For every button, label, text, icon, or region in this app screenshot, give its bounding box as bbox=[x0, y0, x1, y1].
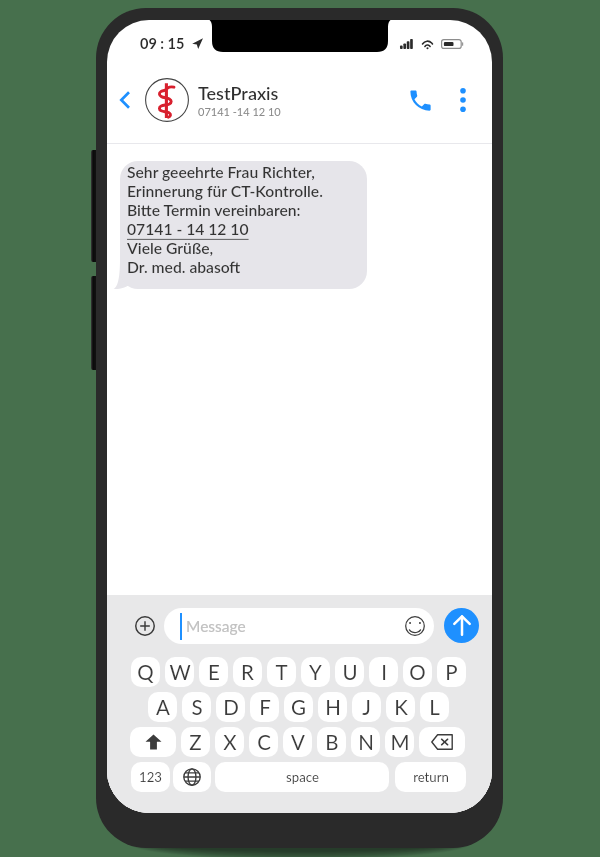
staticText: Viele Grüße, bbox=[127, 239, 214, 258]
staticText: Erinnerung für CT-Kontrolle. bbox=[127, 182, 323, 201]
button[interactable]: Z bbox=[181, 727, 210, 757]
button[interactable]: H bbox=[318, 692, 347, 722]
staticText: TestPraxis bbox=[198, 82, 279, 104]
button[interactable]: A bbox=[148, 692, 177, 722]
button[interactable]: K bbox=[386, 692, 415, 722]
button[interactable] bbox=[130, 727, 176, 757]
staticText: Dr. med. abasoft bbox=[127, 258, 241, 277]
button[interactable]: Add attachment bbox=[131, 612, 159, 640]
button[interactable]: return bbox=[395, 762, 466, 792]
button[interactable]: N bbox=[351, 727, 380, 757]
staticText: L bbox=[429, 695, 440, 720]
button[interactable] bbox=[419, 727, 465, 757]
other: Backspace bbox=[419, 727, 465, 757]
button[interactable]: Send bbox=[444, 608, 479, 643]
staticText: P bbox=[445, 660, 458, 685]
button[interactable]: Y bbox=[301, 657, 330, 687]
button[interactable]: T bbox=[267, 657, 296, 687]
staticText: space bbox=[286, 769, 319, 785]
button[interactable]: W bbox=[165, 657, 194, 687]
staticText: W bbox=[169, 660, 191, 685]
staticText: V bbox=[291, 730, 305, 755]
button[interactable]: O bbox=[403, 657, 432, 687]
button[interactable]: L bbox=[420, 692, 449, 722]
staticText: G bbox=[291, 695, 306, 720]
button[interactable]: E bbox=[199, 657, 228, 687]
staticText: S bbox=[191, 695, 203, 720]
staticText: T bbox=[275, 660, 288, 685]
button[interactable]: F bbox=[250, 692, 279, 722]
staticText: X bbox=[223, 730, 237, 755]
staticText: 07141 - 14 12 10 bbox=[127, 220, 249, 239]
staticText: M bbox=[390, 730, 410, 755]
staticText: 07141 -14 12 10 bbox=[198, 105, 281, 118]
staticText: return bbox=[413, 769, 449, 785]
button[interactable]: M bbox=[385, 727, 414, 757]
staticText: H bbox=[325, 695, 341, 720]
staticText: B bbox=[325, 730, 339, 755]
button[interactable]: I bbox=[369, 657, 398, 687]
button[interactable]: Call bbox=[400, 80, 440, 120]
staticText: Bitte Termin vereinbaren: bbox=[127, 201, 301, 220]
staticText: U bbox=[342, 660, 358, 685]
button[interactable]: Sehr geeehrte Frau Richter, bbox=[120, 161, 367, 289]
staticText: Q bbox=[137, 660, 154, 685]
other: Shift bbox=[130, 727, 176, 757]
button[interactable]: X bbox=[215, 727, 244, 757]
staticText: 123 bbox=[139, 769, 162, 785]
staticText: R bbox=[241, 660, 254, 685]
button[interactable]: U bbox=[335, 657, 364, 687]
staticText: F bbox=[259, 695, 271, 720]
button[interactable]: P bbox=[437, 657, 466, 687]
button[interactable]: V bbox=[283, 727, 312, 757]
button[interactable]: R bbox=[233, 657, 262, 687]
button[interactable]: Emoji bbox=[404, 615, 426, 637]
button[interactable]: J bbox=[352, 692, 381, 722]
button[interactable]: S bbox=[182, 692, 211, 722]
staticText: Sehr geeehrte Frau Richter, bbox=[127, 163, 315, 182]
button[interactable]: 123 bbox=[131, 762, 170, 792]
staticText: N bbox=[358, 730, 374, 755]
button[interactable]: space bbox=[215, 762, 389, 792]
staticText: O bbox=[409, 660, 426, 685]
other: Change keyboard language bbox=[173, 762, 211, 792]
staticText: Z bbox=[189, 730, 202, 755]
staticText: Message bbox=[186, 617, 246, 636]
button[interactable]: D bbox=[216, 692, 245, 722]
button[interactable]: G bbox=[284, 692, 313, 722]
button[interactable]: C bbox=[249, 727, 278, 757]
staticText: 09 : 15 bbox=[140, 35, 185, 52]
staticText: D bbox=[223, 695, 239, 720]
staticText: I bbox=[381, 660, 387, 685]
staticText: Y bbox=[309, 660, 322, 685]
staticText: C bbox=[257, 730, 271, 755]
button[interactable] bbox=[173, 762, 211, 792]
button[interactable]: B bbox=[317, 727, 346, 757]
staticText: E bbox=[208, 660, 220, 685]
staticText: K bbox=[394, 695, 408, 720]
staticText: J bbox=[362, 695, 371, 720]
staticText: A bbox=[156, 695, 170, 720]
button[interactable]: Message bbox=[164, 608, 434, 644]
button[interactable]: More options bbox=[446, 83, 480, 117]
button[interactable]: Q bbox=[131, 657, 160, 687]
button[interactable]: Back bbox=[107, 82, 143, 118]
